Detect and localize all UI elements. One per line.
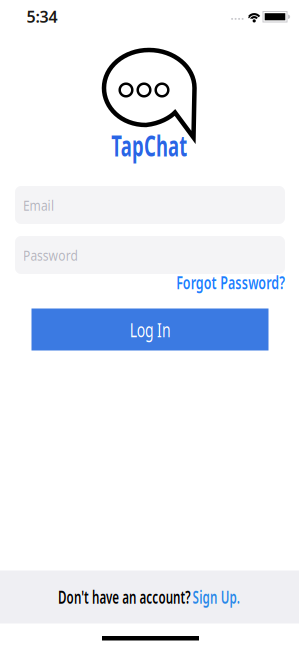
staticText: Log In bbox=[121, 316, 179, 343]
button[interactable]: Sign Up. bbox=[214, 585, 285, 608]
staticText: TapChat bbox=[89, 125, 210, 164]
staticText: Forgot Password? bbox=[134, 271, 285, 294]
button[interactable]: Log In bbox=[31, 308, 268, 350]
staticText: 5:34 bbox=[26, 6, 57, 27]
staticText: Don't have an account? bbox=[13, 585, 211, 608]
staticText: Sign Up. bbox=[214, 585, 285, 608]
button[interactable]: Email bbox=[15, 186, 285, 224]
button[interactable]: Forgot Password? bbox=[134, 271, 285, 294]
staticText: Email bbox=[23, 195, 61, 215]
staticText: Password bbox=[23, 245, 90, 265]
button[interactable]: Password bbox=[15, 236, 285, 274]
